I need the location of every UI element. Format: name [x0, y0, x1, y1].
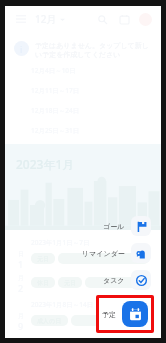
other: 予定を作成	[122, 301, 148, 327]
staticText: 12月	[35, 12, 57, 26]
staticText: 2023年1月1日～7日	[31, 238, 90, 247]
button[interactable]: 日	[14, 250, 149, 270]
staticText: 9	[18, 320, 24, 332]
button[interactable]: View options	[116, 11, 132, 27]
button[interactable]: リマインダー	[82, 243, 151, 263]
button[interactable]: 12月	[35, 12, 65, 26]
button[interactable]: 予定	[102, 301, 148, 327]
button[interactable]: ゴール	[103, 216, 151, 236]
other: タスク	[136, 275, 147, 286]
staticText: 予定	[102, 310, 116, 319]
staticText: 日	[18, 250, 24, 258]
staticText: リマインダー	[82, 249, 125, 258]
staticText: タスク	[103, 276, 125, 285]
button[interactable]: 月	[14, 274, 149, 294]
staticText: 2023年1月8日～14日	[31, 300, 94, 309]
button[interactable]: Menu	[14, 12, 28, 26]
button[interactable]: タスク	[103, 270, 151, 290]
staticText: i	[20, 43, 23, 55]
staticText: 予定はありません。タップして新しい予定を作成してください	[35, 41, 149, 60]
staticText: 12月18日～24日	[31, 106, 80, 115]
button[interactable]: Search	[94, 11, 110, 27]
staticText: 2023年1月	[16, 156, 75, 172]
staticText: ゴール	[103, 222, 125, 231]
other: リマインダー	[136, 248, 147, 259]
other: ゴール	[136, 221, 147, 232]
staticText: 12月25日～31日	[31, 126, 80, 135]
staticText: 2	[18, 282, 24, 294]
button[interactable]: 月	[14, 312, 149, 332]
button[interactable]: Account	[139, 13, 152, 26]
